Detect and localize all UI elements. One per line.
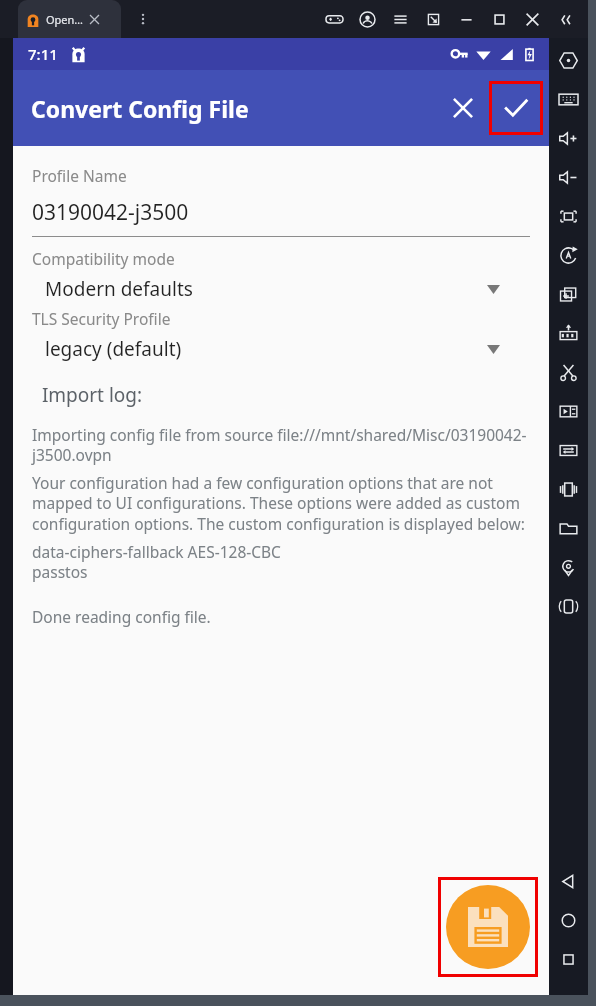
button[interactable]: Keyboard — [549, 80, 588, 119]
button[interactable]: Volume down — [549, 158, 588, 197]
button[interactable]: Minimize — [450, 0, 483, 38]
button[interactable]: Files — [549, 509, 588, 548]
staticText: Profile Name — [32, 165, 127, 186]
staticText: Your configuration had a few configurati… — [32, 472, 530, 535]
button[interactable]: Save — [446, 885, 530, 969]
staticText: legacy (default) — [45, 336, 487, 362]
button[interactable]: Media — [549, 392, 588, 431]
button[interactable]: Network — [549, 431, 588, 470]
staticText: Importing config file from source file:/… — [32, 424, 530, 466]
button[interactable]: Fold — [549, 470, 588, 509]
button[interactable]: Maximize — [483, 0, 516, 38]
button[interactable]: Open… — [18, 0, 121, 38]
staticText: Compatibility mode — [32, 248, 175, 269]
button[interactable]: Resize — [417, 0, 450, 38]
button[interactable]: Location — [549, 548, 588, 587]
button[interactable]: Cancel — [439, 84, 487, 132]
button[interactable]: Hinge — [549, 587, 588, 626]
button[interactable]: Install APK — [549, 314, 588, 353]
button[interactable]: 03190042-j3500 — [32, 198, 530, 237]
button[interactable]: Snapshots — [549, 275, 588, 314]
button[interactable]: Rotate — [549, 236, 588, 275]
staticText: Done reading config file. — [32, 606, 211, 627]
staticText: 03190042-j3500 — [32, 198, 189, 227]
staticText: Open… — [46, 12, 84, 27]
staticText: 7:11 — [28, 44, 58, 64]
button[interactable]: Back — [549, 862, 588, 901]
button[interactable]: legacy (default) — [32, 333, 530, 365]
button[interactable]: Screen record — [549, 353, 588, 392]
staticText: Convert Config File — [31, 93, 249, 124]
button[interactable]: Home — [549, 901, 588, 940]
button[interactable]: Volume up — [549, 119, 588, 158]
staticText: Modern defaults — [45, 276, 487, 302]
button[interactable]: Overview — [549, 940, 588, 979]
staticText: TLS Security Profile — [32, 308, 171, 329]
button[interactable]: Power — [549, 41, 588, 80]
button[interactable]: Save — [489, 81, 543, 135]
button[interactable]: Close window — [516, 0, 549, 38]
button[interactable]: Modern defaults — [32, 273, 530, 305]
button[interactable]: Close tab — [88, 13, 101, 26]
button[interactable]: Game controller — [318, 0, 351, 38]
button[interactable]: Screenshot — [549, 197, 588, 236]
button[interactable]: Collapse — [549, 0, 582, 38]
staticText: data-ciphers-fallback AES-128-CBC passto… — [32, 541, 281, 583]
button[interactable]: More options — [128, 0, 158, 38]
staticText: Import log: — [32, 382, 143, 408]
button[interactable]: Menu — [384, 0, 417, 38]
button[interactable]: Account — [351, 0, 384, 38]
